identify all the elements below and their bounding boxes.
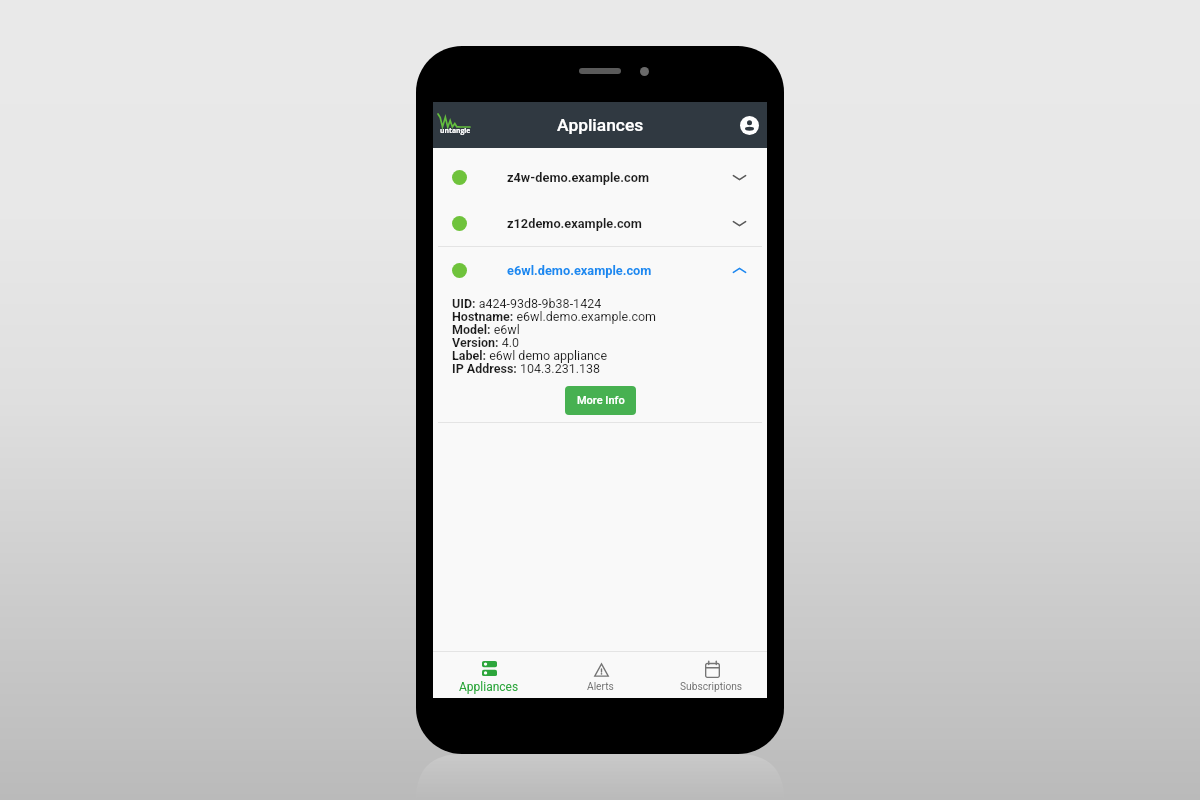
button[interactable]: Account xyxy=(736,112,762,138)
staticText: z4w-demo.example.com xyxy=(507,170,649,185)
staticText: UID: a424-93d8-9b38-1424 Hostname: e6wl.… xyxy=(452,296,657,376)
button[interactable]: z4w-demo.example.com xyxy=(433,154,767,200)
staticText: Appliances xyxy=(557,115,644,135)
staticText: z12demo.example.com xyxy=(507,216,642,231)
button[interactable]: Appliances xyxy=(433,652,545,698)
button[interactable]: More Info xyxy=(565,386,636,415)
button[interactable]: z12demo.example.com xyxy=(433,200,767,246)
button[interactable]: Alerts xyxy=(545,652,656,698)
staticText: untangle xyxy=(440,126,472,135)
staticText: Alerts xyxy=(587,681,614,693)
button[interactable]: Subscriptions xyxy=(656,652,767,698)
staticText: Subscriptions xyxy=(680,681,743,693)
staticText: More Info xyxy=(577,394,625,407)
staticText: e6wl.demo.example.com xyxy=(507,263,652,278)
button[interactable]: e6wl.demo.example.com xyxy=(433,247,767,293)
staticText: Appliances xyxy=(459,680,519,694)
